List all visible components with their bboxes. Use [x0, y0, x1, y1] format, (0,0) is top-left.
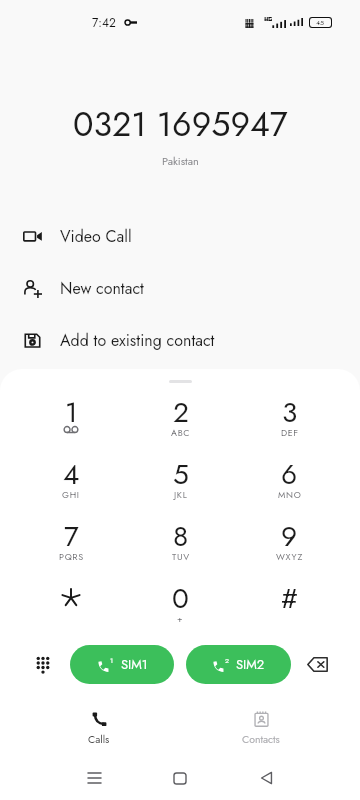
button[interactable]: 9: [235, 516, 344, 578]
staticText: 7:42: [92, 14, 116, 31]
staticText: 0: [172, 578, 189, 618]
staticText: 1: [65, 392, 78, 432]
staticText: 5: [173, 454, 189, 494]
staticText: Video Call: [60, 225, 132, 248]
staticText: SIM2: [236, 655, 265, 674]
staticText: SIM1: [121, 655, 148, 674]
button[interactable]: 2: [186, 645, 291, 684]
button[interactable]: Show keypad: [29, 649, 56, 679]
staticText: 3: [282, 392, 298, 432]
staticText: Contacts: [242, 732, 280, 747]
staticText: 45: [316, 18, 325, 27]
button[interactable]: 6: [235, 454, 344, 516]
staticText: 2: [173, 392, 189, 432]
staticText: 9: [281, 516, 298, 556]
staticText: New contact: [60, 277, 144, 300]
staticText: +: [177, 612, 184, 625]
button[interactable]: Backspace: [304, 649, 330, 679]
button[interactable]: Home: [158, 758, 202, 798]
staticText: JKL: [174, 488, 188, 501]
staticText: 2: [225, 656, 229, 666]
button[interactable]: #: [235, 578, 344, 640]
button[interactable]: Back: [244, 758, 288, 798]
staticText: Add to existing contact: [60, 329, 215, 352]
button[interactable]: Video Call: [0, 210, 360, 262]
button[interactable]: 8: [126, 516, 235, 578]
button[interactable]: 7: [16, 516, 126, 578]
button[interactable]: 1: [16, 392, 126, 454]
button[interactable]: Recent apps: [72, 758, 116, 798]
staticText: 7: [64, 516, 79, 556]
staticText: #: [281, 578, 298, 618]
button[interactable]: Contacts: [180, 704, 342, 760]
staticText: Calls: [88, 732, 110, 747]
staticText: Pakistan: [162, 153, 199, 169]
staticText: GHI: [62, 488, 80, 501]
button[interactable]: New contact: [0, 262, 360, 314]
staticText: 0321 1695947: [73, 100, 288, 149]
staticText: 4: [63, 454, 80, 494]
button[interactable]: 3: [235, 392, 344, 454]
button[interactable]: 0: [126, 578, 235, 640]
staticText: MNO: [278, 488, 302, 501]
button[interactable]: Calls: [18, 704, 180, 760]
button[interactable]: 4: [16, 454, 126, 516]
staticText: WXYZ: [276, 550, 304, 563]
staticText: TUV: [172, 550, 190, 563]
button[interactable]: 5: [126, 454, 235, 516]
button[interactable]: Add to existing contact: [0, 314, 360, 366]
staticText: 1: [110, 656, 114, 666]
staticText: 8: [173, 516, 189, 556]
staticText: 6: [281, 454, 298, 494]
staticText: ABC: [171, 426, 191, 439]
button[interactable]: [16, 578, 126, 640]
staticText: PQRS: [59, 550, 84, 563]
button[interactable]: 2: [126, 392, 235, 454]
staticText: DEF: [281, 426, 299, 439]
button[interactable]: 1: [70, 645, 174, 684]
